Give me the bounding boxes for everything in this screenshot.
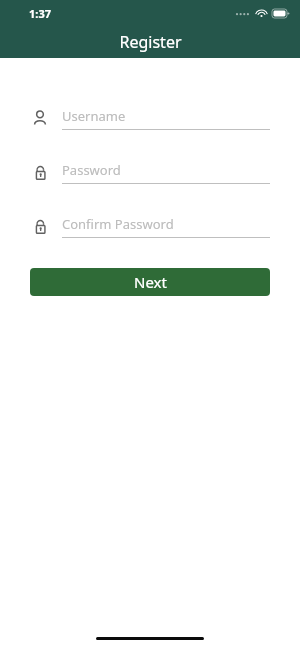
- button[interactable]: Password: [30, 158, 270, 186]
- other: Password: [30, 162, 50, 182]
- button[interactable]: Next: [30, 268, 270, 296]
- staticText: Next: [134, 272, 167, 292]
- staticText: Username: [62, 107, 126, 125]
- other: Wi-Fi: [255, 8, 268, 18]
- other: Confirm Password: [30, 216, 50, 236]
- other: Cellular signal: [235, 8, 251, 18]
- other: Username: [30, 108, 50, 128]
- staticText: Confirm Password: [62, 215, 174, 233]
- button[interactable]: Username: [30, 104, 270, 132]
- staticText: Password: [62, 161, 121, 179]
- button[interactable]: Confirm Password: [30, 212, 270, 240]
- staticText: Register: [119, 31, 182, 53]
- staticText: 1:37: [29, 6, 51, 21]
- other: Battery: [272, 9, 289, 18]
